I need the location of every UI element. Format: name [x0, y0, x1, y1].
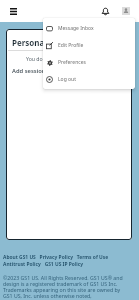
button[interactable]: Menu	[4, 3, 22, 19]
button[interactable]: Profile	[117, 3, 134, 19]
staticText: Preferences	[58, 59, 86, 66]
staticText: About GS1 US Privacy Policy Terms of Use	[3, 254, 109, 261]
staticText: Message Inbox	[58, 25, 94, 32]
staticText: Edit Profile	[58, 42, 84, 49]
staticText: ©2023 GS1 US. All Rights Reserved. GS1 U…	[3, 274, 129, 299]
staticText: Log out	[58, 76, 76, 83]
staticText: You do not have any sessions.	[26, 55, 99, 62]
button[interactable]: Message Inbox	[43, 20, 135, 37]
button[interactable]: Notifications	[97, 3, 114, 19]
button[interactable]: Log out	[43, 71, 135, 88]
button[interactable]: Add session	[12, 67, 46, 75]
staticText: Antitrust Policy GS1 US IP Policy	[3, 261, 84, 268]
staticText: Personal Dashboard	[12, 37, 92, 48]
button[interactable]: Edit Profile	[43, 37, 135, 54]
button[interactable]: Preferences	[43, 54, 135, 71]
